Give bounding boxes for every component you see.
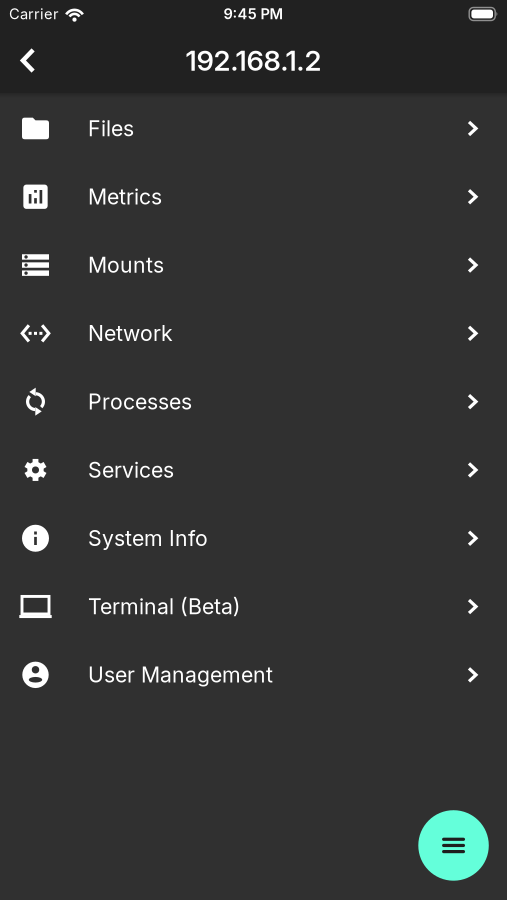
button[interactable]: Services <box>0 436 507 504</box>
button[interactable]: Terminal (Beta) <box>0 572 507 641</box>
button[interactable]: Metrics <box>0 163 507 231</box>
button[interactable]: Files <box>0 94 507 163</box>
staticText: Network <box>88 321 173 346</box>
button[interactable]: System Info <box>0 504 507 572</box>
button[interactable] <box>0 48 36 73</box>
staticText: Files <box>88 116 134 141</box>
staticText: Services <box>88 457 174 483</box>
staticText: Metrics <box>88 184 162 209</box>
staticText: Carrier <box>9 5 59 23</box>
button[interactable]: Network <box>0 299 507 367</box>
staticText: 9:45 PM <box>223 5 283 23</box>
button[interactable]: Processes <box>0 367 507 436</box>
staticText: Mounts <box>88 252 164 278</box>
staticText: System Info <box>88 526 208 551</box>
button[interactable] <box>418 810 489 881</box>
staticText: Processes <box>88 389 192 414</box>
staticText: Terminal (Beta) <box>88 594 241 619</box>
staticText: User Management <box>88 662 273 687</box>
button[interactable]: User Management <box>0 641 507 709</box>
button[interactable]: Mounts <box>0 231 507 299</box>
staticText: 192.168.1.2 <box>185 44 321 77</box>
